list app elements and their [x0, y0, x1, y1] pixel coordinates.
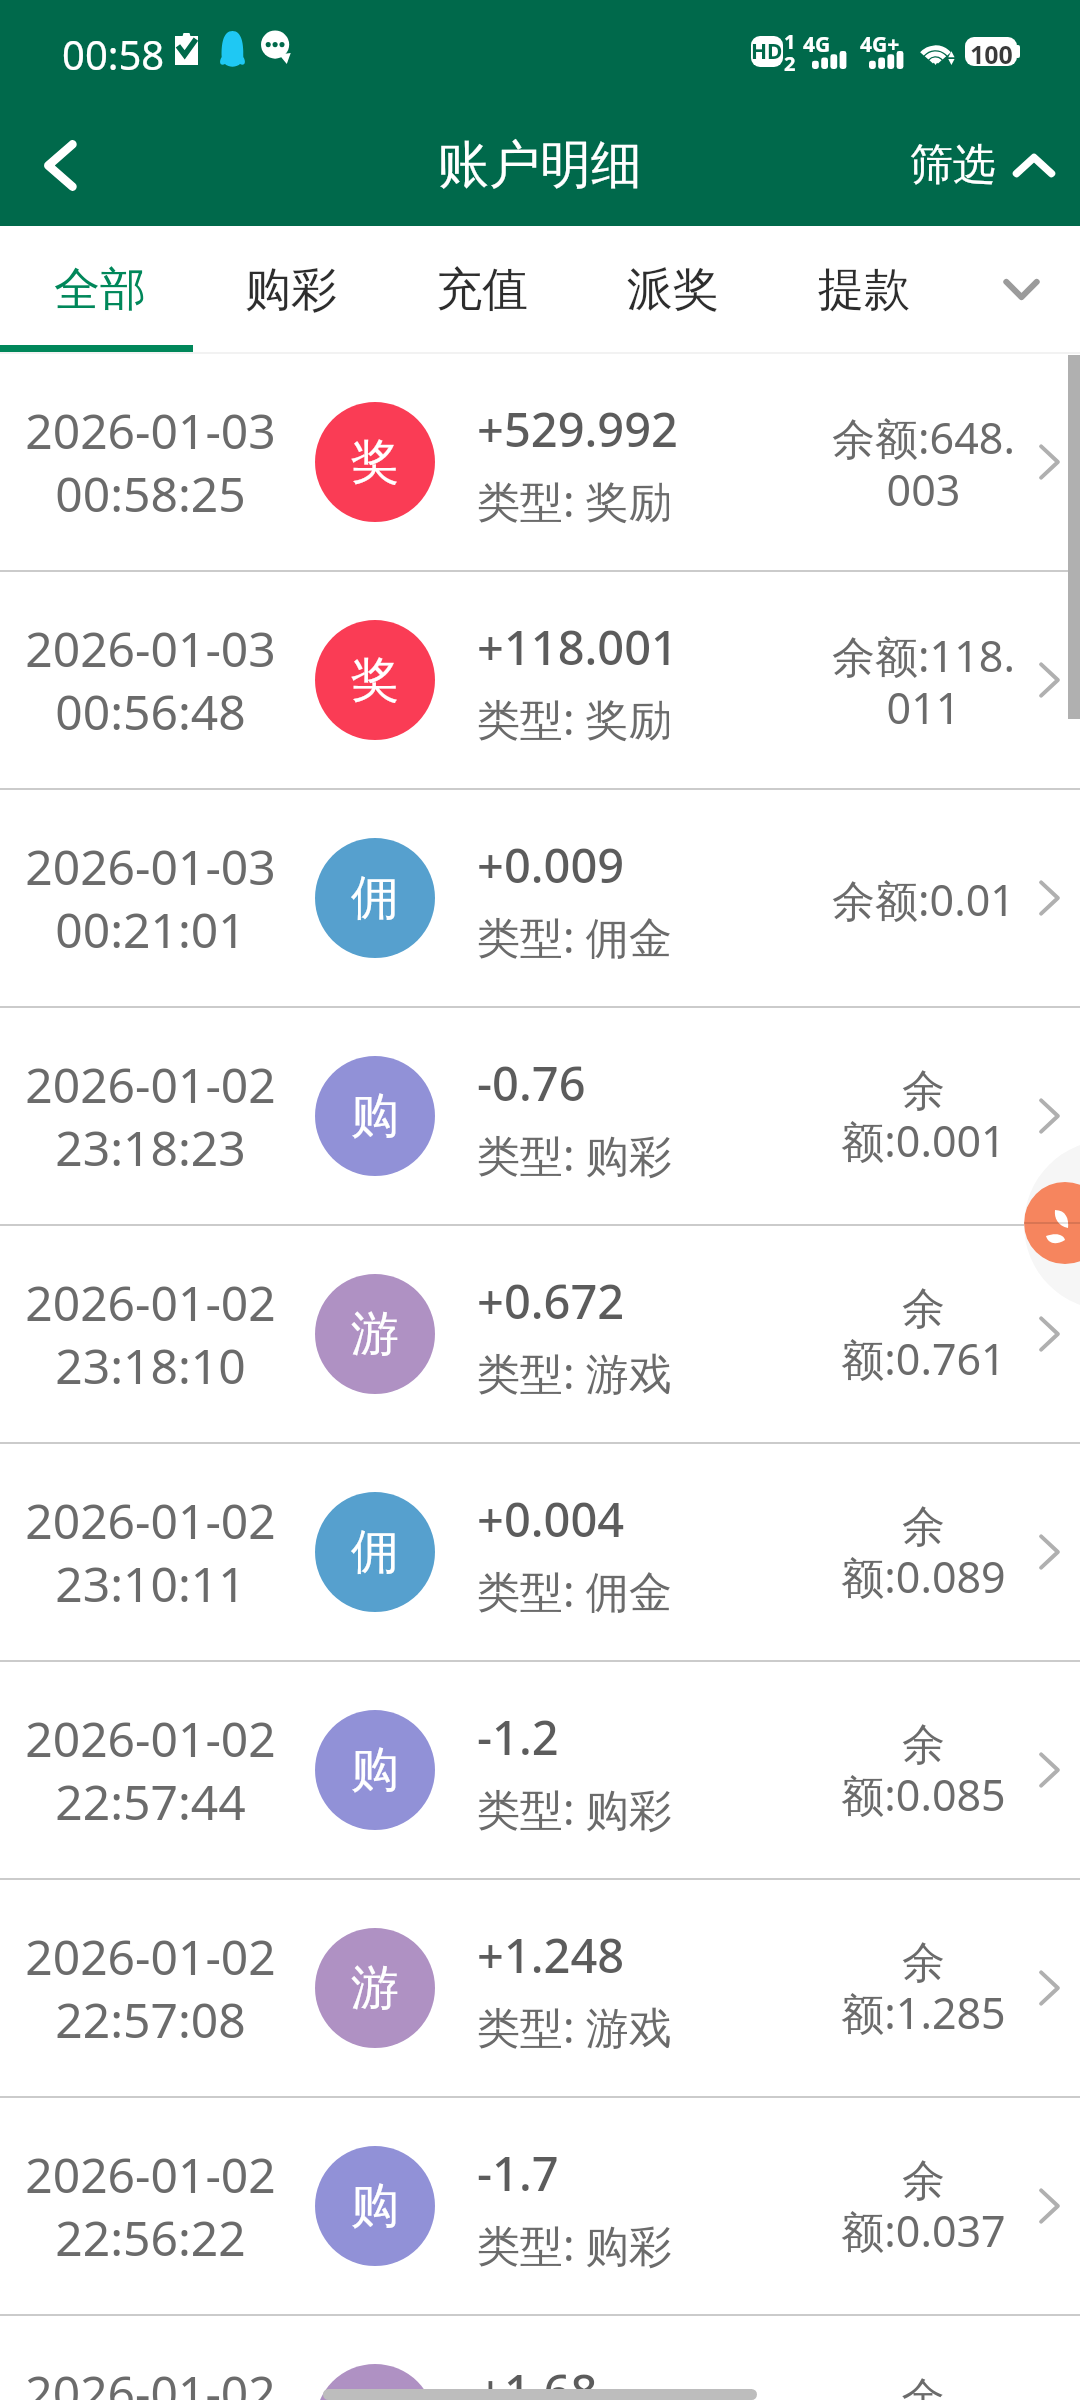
- staticText: +1.248: [477, 1923, 625, 1987]
- staticText: 类型: 奖励: [477, 689, 672, 748]
- staticText: 类型: 佣金: [477, 907, 672, 966]
- staticText: 4G+: [860, 30, 900, 59]
- button[interactable]: 派奖: [577, 229, 768, 350]
- staticText: 派奖: [627, 261, 719, 319]
- staticText: 余 额:0.001: [841, 1064, 1006, 1170]
- staticText: 充值: [436, 261, 528, 319]
- staticText: 佣: [351, 1522, 399, 1582]
- staticText: 2026-01-02 22:57:08: [25, 1924, 276, 2053]
- button[interactable]: Back: [0, 104, 120, 226]
- staticText: 类型: 购彩: [477, 2215, 672, 2274]
- staticText: 提款: [818, 261, 910, 319]
- staticText: 2026-01-02 22:55:30: [25, 2360, 276, 2400]
- staticText: 00:58: [62, 27, 165, 81]
- staticText: 余 额:1.285: [841, 1936, 1006, 2042]
- staticText: 余额:118. 011: [832, 626, 1015, 737]
- button[interactable]: Customer service: [1024, 1140, 1080, 1310]
- staticText: 类型: 游戏: [477, 1997, 672, 2056]
- staticText: 游: [351, 1304, 399, 1364]
- staticText: 余额:0.01: [832, 870, 1015, 929]
- staticText: +529.992: [477, 397, 678, 461]
- staticText: HD: [751, 37, 783, 66]
- button[interactable]: 提款: [768, 229, 959, 350]
- staticText: 余 额:0.089: [841, 1500, 1006, 1606]
- button[interactable]: 2026-01-02 22:55:30: [0, 2316, 1080, 2400]
- staticText: -0.76: [477, 1051, 586, 1115]
- staticText: 2026-01-03 00:56:48: [25, 616, 276, 745]
- button[interactable]: 2026-01-02 23:18:10: [0, 1226, 1080, 1442]
- button[interactable]: 充值: [386, 229, 577, 350]
- staticText: 游: [351, 1958, 399, 2018]
- staticText: 余额:648. 003: [832, 408, 1015, 519]
- staticText: 2026-01-02 22:56:22: [25, 2142, 276, 2271]
- staticText: 筛选: [910, 138, 996, 192]
- staticText: 100: [970, 37, 1013, 66]
- staticText: 2026-01-02 23:10:11: [25, 1488, 276, 1617]
- staticText: 购: [351, 1086, 399, 1146]
- button[interactable]: 2026-01-02 23:18:23: [0, 1008, 1080, 1224]
- staticText: 佣: [351, 868, 399, 928]
- staticText: 余 额:0.761: [841, 1282, 1006, 1388]
- button[interactable]: 2026-01-02 22:56:22: [0, 2098, 1080, 2314]
- staticText: +0.004: [477, 1487, 625, 1551]
- staticText: 2026-01-02 22:57:44: [25, 1706, 276, 1835]
- staticText: 类型: 购彩: [477, 1779, 672, 1838]
- staticText: 购彩: [245, 261, 337, 319]
- button[interactable]: Expand tabs: [959, 229, 1080, 350]
- staticText: 购: [351, 2176, 399, 2236]
- staticText: 类型: 奖励: [477, 471, 672, 530]
- staticText: +0.009: [477, 833, 625, 897]
- staticText: 奖: [351, 432, 399, 492]
- button[interactable]: 购彩: [195, 229, 386, 350]
- button[interactable]: 2026-01-03 00:56:48: [0, 572, 1080, 788]
- button[interactable]: 2026-01-02 22:57:44: [0, 1662, 1080, 1878]
- button[interactable]: 2026-01-02 23:10:11: [0, 1444, 1080, 1660]
- staticText: -1.7: [477, 2141, 559, 2205]
- staticText: +118.001: [477, 615, 678, 679]
- button[interactable]: 筛选: [890, 138, 1080, 192]
- staticText: 购: [351, 1740, 399, 1800]
- staticText: +1.68: [477, 2359, 598, 2400]
- staticText: 账户明细: [438, 133, 642, 197]
- button[interactable]: 全部: [4, 229, 195, 350]
- staticText: 余 额:0.037: [841, 2154, 1006, 2260]
- staticText: 类型: 购彩: [477, 1125, 672, 1184]
- staticText: 2026-01-02 23:18:10: [25, 1270, 276, 1399]
- staticText: 2: [784, 50, 796, 77]
- staticText: 全部: [54, 261, 146, 319]
- staticText: 类型: 游戏: [477, 1343, 672, 1402]
- button[interactable]: 2026-01-03 00:58:25: [0, 354, 1080, 570]
- staticText: 1: [784, 28, 796, 55]
- staticText: 2026-01-03 00:21:01: [25, 834, 276, 963]
- staticText: 奖: [351, 650, 399, 710]
- staticText: 2026-01-03 00:58:25: [25, 398, 276, 527]
- button[interactable]: 2026-01-02 22:57:08: [0, 1880, 1080, 2096]
- staticText: 类型: 佣金: [477, 1561, 672, 1620]
- button[interactable]: 2026-01-03 00:21:01: [0, 790, 1080, 1006]
- staticText: 余 额:0.085: [841, 1718, 1006, 1824]
- staticText: 4G: [803, 30, 831, 59]
- staticText: -1.2: [477, 1705, 559, 1769]
- staticText: 2026-01-02 23:18:23: [25, 1052, 276, 1181]
- staticText: +0.672: [477, 1269, 625, 1333]
- staticText: 余 额:1.7: [865, 2372, 981, 2400]
